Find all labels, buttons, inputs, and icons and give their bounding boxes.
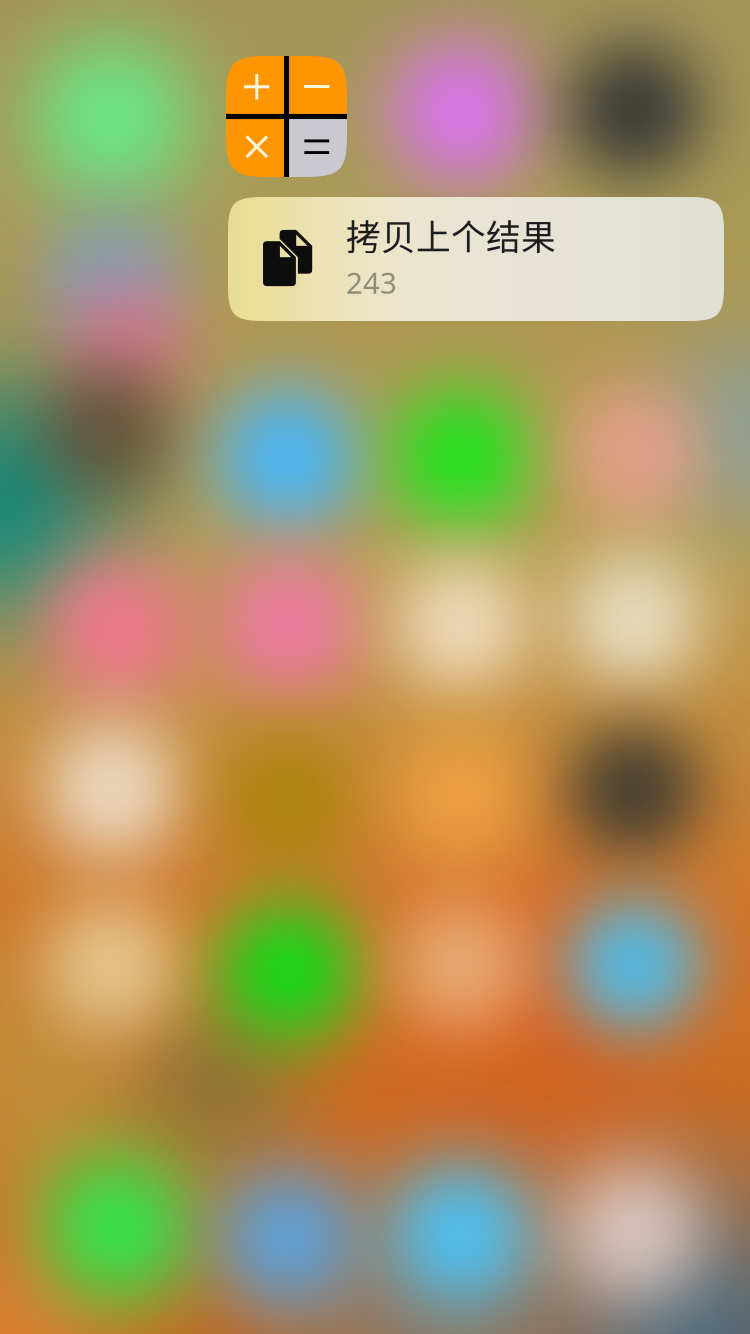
button[interactable]: 拷贝上个结果 xyxy=(228,197,724,321)
button[interactable]: Calculator xyxy=(226,56,347,177)
staticText: 拷贝上个结果 xyxy=(346,210,556,260)
staticText: 243 xyxy=(346,263,397,302)
